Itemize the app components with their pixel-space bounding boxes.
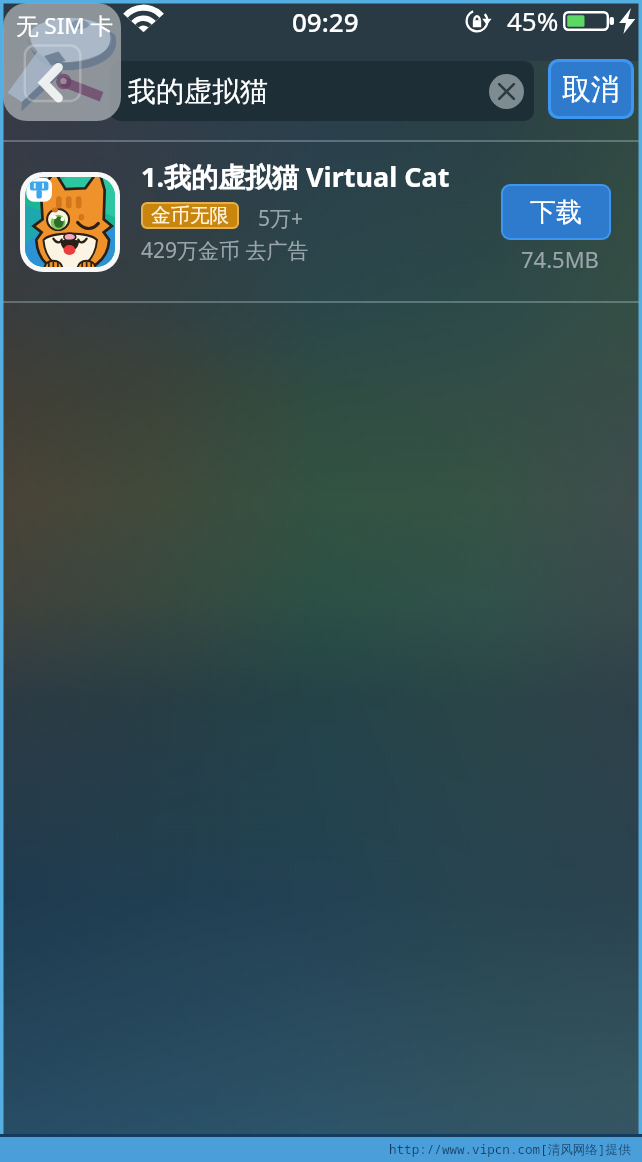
staticText: 金币无限	[151, 203, 229, 228]
staticText: 取消	[562, 71, 620, 108]
staticText: 5万+	[258, 204, 304, 233]
staticText: 1.我的虚拟猫 Virtual Cat	[141, 158, 450, 195]
staticText: 74.5MB	[521, 244, 599, 274]
button[interactable]: Clear search	[489, 74, 524, 109]
staticText: 429万金币 去广告	[141, 236, 309, 265]
button[interactable]: 下载	[503, 186, 609, 238]
staticText: http://www.vipcn.com[清风网络]提供	[389, 1141, 631, 1158]
button[interactable]: 1.我的虚拟猫 Virtual Cat	[0, 142, 642, 301]
button[interactable]: 我的虚拟猫	[110, 61, 534, 121]
staticText: 45%	[507, 3, 559, 38]
button[interactable]: 取消	[551, 62, 631, 116]
staticText: 无 SIM 卡	[16, 10, 114, 41]
staticText: 09:29	[292, 4, 359, 39]
staticText: 我的虚拟猫	[128, 74, 268, 109]
staticText: 下载	[530, 196, 582, 229]
other: Back to previous app	[3, 3, 121, 121]
